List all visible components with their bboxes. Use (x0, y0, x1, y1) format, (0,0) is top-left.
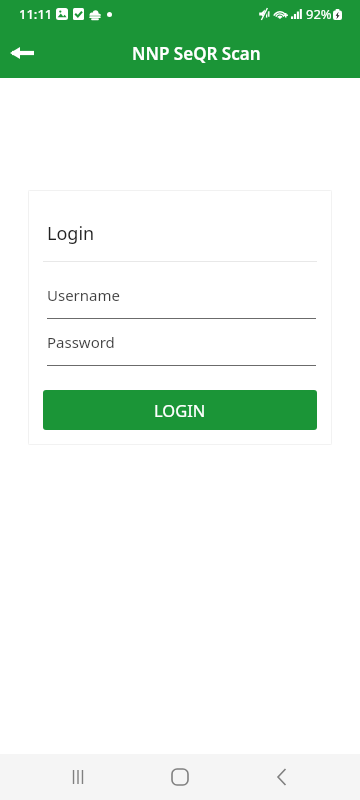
button[interactable]: Username (47, 285, 316, 319)
staticText: Password (47, 332, 115, 352)
button[interactable]: LOGIN (43, 390, 317, 430)
staticText: Login (47, 221, 95, 246)
staticText: LOGIN (154, 399, 206, 421)
staticText: NNP SeQR Scan (132, 42, 261, 65)
staticText: 11:11 (19, 5, 53, 23)
button[interactable]: Back (2, 33, 42, 73)
button[interactable]: Password (47, 332, 316, 366)
button[interactable]: Home (156, 754, 204, 800)
staticText: 92% (306, 5, 332, 23)
button[interactable]: Back (258, 754, 306, 800)
staticText: Username (47, 285, 120, 305)
button[interactable]: Recents (54, 754, 102, 800)
